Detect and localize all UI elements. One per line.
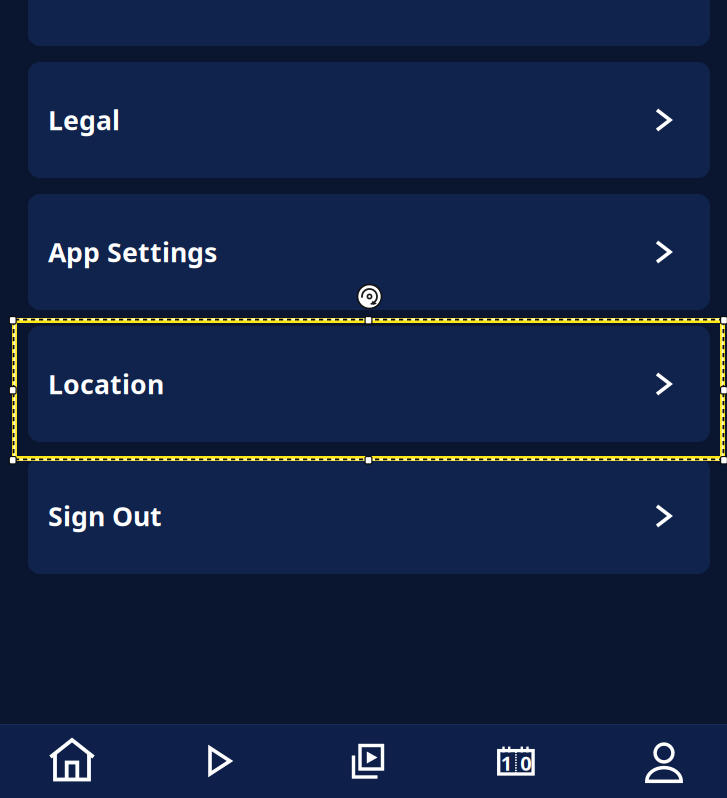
staticText: Location <box>48 366 164 402</box>
button[interactable]: Library <box>294 724 442 798</box>
staticText: App Settings <box>48 234 217 270</box>
staticText: 0 <box>520 750 531 776</box>
button[interactable]: Home <box>0 724 146 798</box>
button[interactable]: Watch <box>146 724 294 798</box>
button[interactable]: App Settings <box>28 194 710 310</box>
button[interactable]: Location <box>28 326 710 442</box>
button[interactable]: Scores <box>442 724 590 798</box>
button[interactable]: Legal <box>28 62 710 178</box>
staticText: 1 <box>501 750 512 776</box>
button[interactable]: Sign Out <box>28 458 710 574</box>
staticText: Sign Out <box>48 498 162 534</box>
button[interactable]: Profile <box>590 724 727 798</box>
staticText: Legal <box>48 102 120 138</box>
